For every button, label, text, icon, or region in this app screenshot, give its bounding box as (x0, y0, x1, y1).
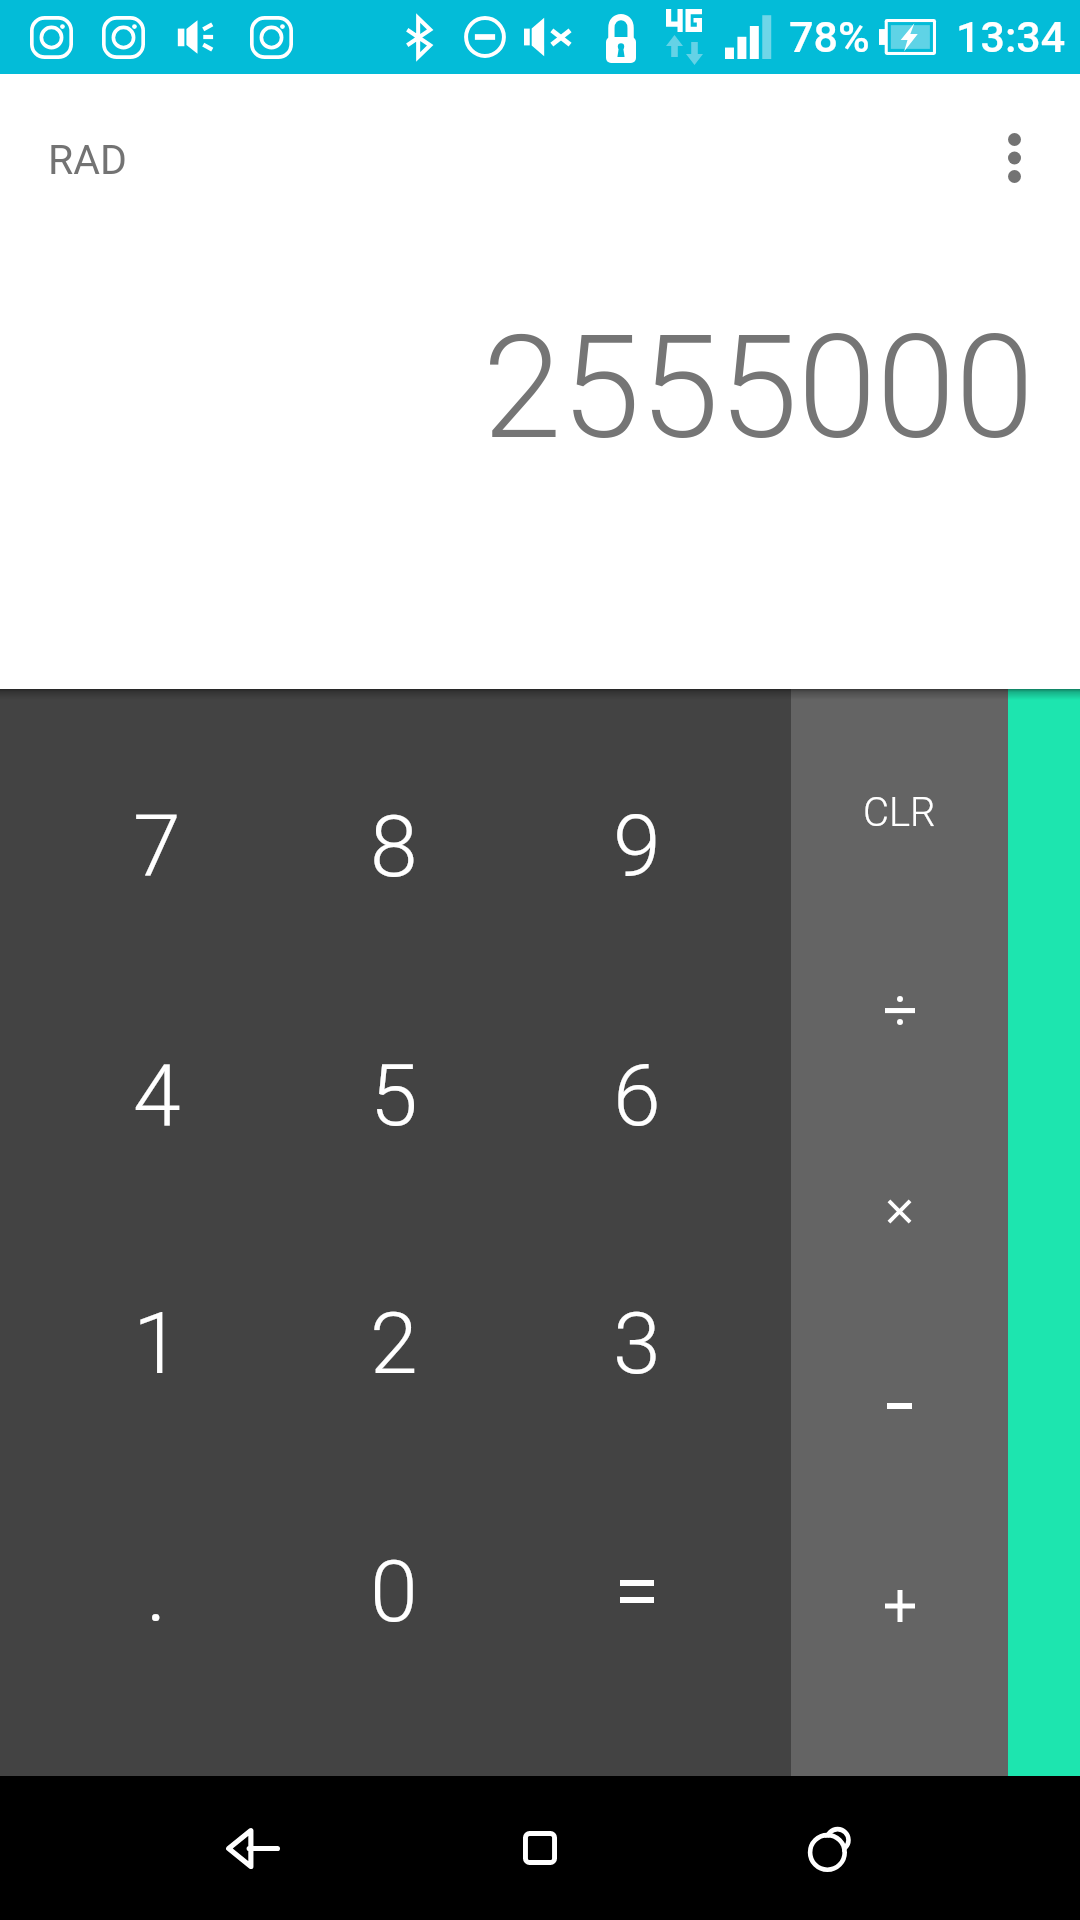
button[interactable]: Multiply (791, 1107, 1008, 1306)
button[interactable]: 1 (0, 1219, 263, 1467)
staticText: CLR (863, 789, 936, 836)
staticText: 4 (133, 1045, 181, 1146)
button[interactable]: 8 (263, 722, 527, 971)
button[interactable]: Equals (527, 1467, 791, 1715)
button[interactable]: . (0, 1467, 263, 1715)
button[interactable]: 3 (527, 1219, 791, 1467)
staticText: 7 (133, 796, 181, 897)
button[interactable]: More options (954, 98, 1074, 218)
button[interactable]: Home (360, 1776, 720, 1920)
button[interactable]: Minus (791, 1306, 1008, 1505)
button[interactable]: History (1008, 689, 1080, 1776)
button[interactable]: 2 (263, 1219, 527, 1467)
button[interactable]: 5 (263, 971, 527, 1219)
button[interactable]: Recent apps (720, 1776, 1080, 1920)
staticText: 78% (789, 12, 870, 62)
button[interactable]: Back (0, 1776, 360, 1920)
staticText: 2 (370, 1293, 418, 1394)
button[interactable]: 0 (263, 1467, 527, 1715)
button[interactable]: Divide (791, 909, 1008, 1107)
button[interactable]: 7 (0, 722, 263, 971)
staticText: 6 (613, 1045, 661, 1146)
button[interactable]: Plus (791, 1505, 1008, 1704)
staticText: 8 (370, 796, 418, 897)
button[interactable]: 6 (527, 971, 791, 1219)
staticText: 3 (613, 1293, 661, 1394)
staticText: 9 (613, 796, 661, 897)
staticText: 0 (370, 1541, 418, 1642)
staticText: 5 (370, 1045, 418, 1146)
staticText: RAD (48, 136, 127, 184)
staticText: 13:34 (956, 12, 1066, 62)
staticText: 2555000 (482, 305, 1034, 471)
staticText: . (146, 1541, 167, 1642)
button[interactable]: 4 (0, 971, 263, 1219)
staticText: 1 (133, 1293, 181, 1394)
button[interactable]: 9 (527, 722, 791, 971)
button[interactable]: Clear (791, 711, 1008, 909)
